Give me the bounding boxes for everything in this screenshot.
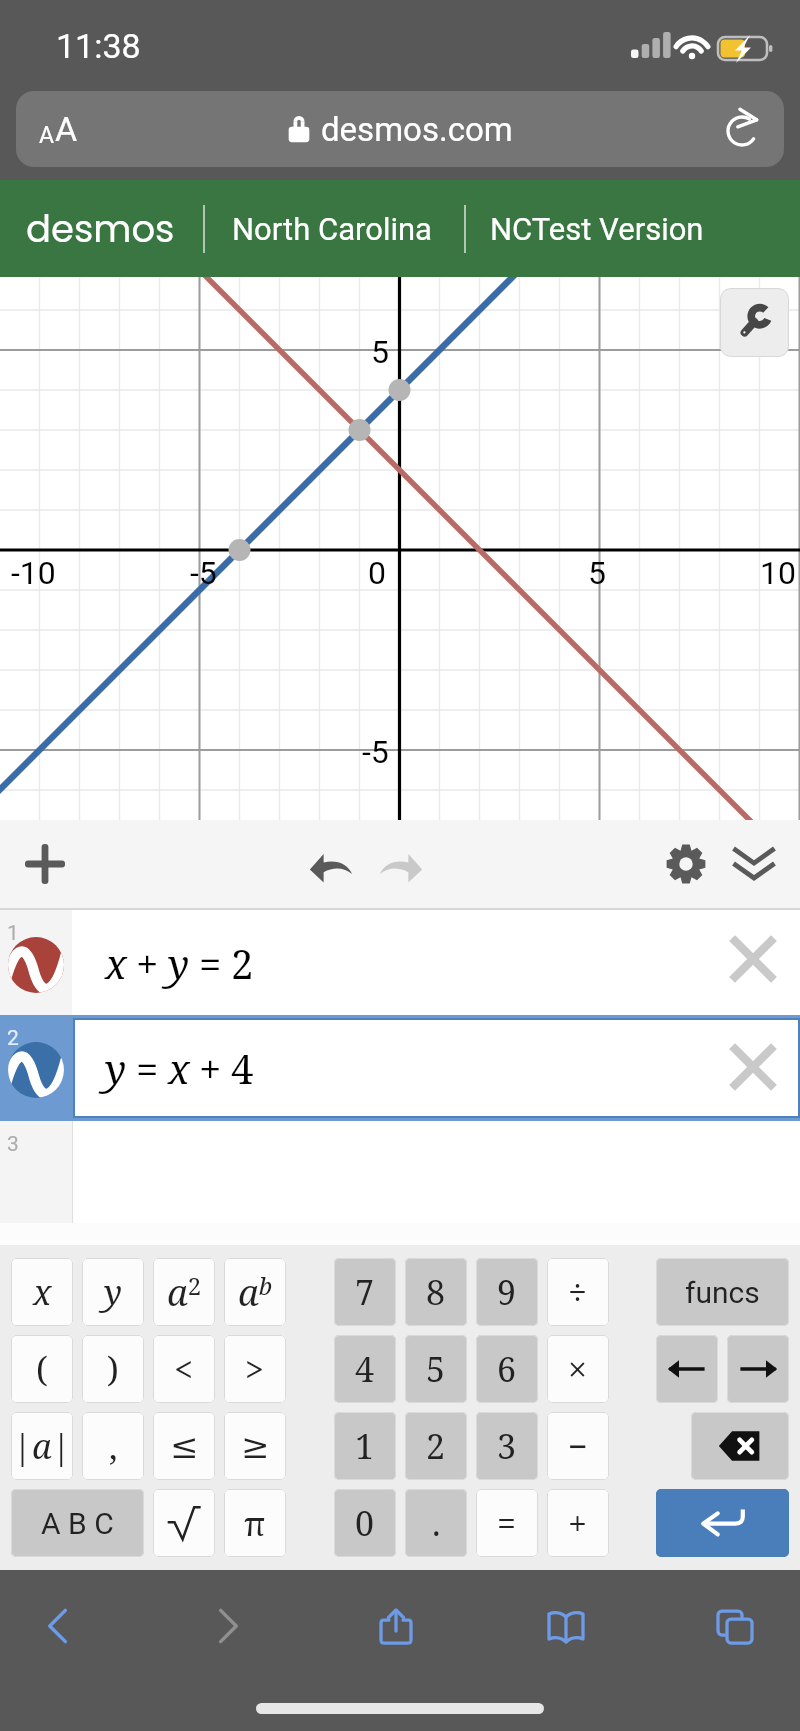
button[interactable]: 7: [334, 1258, 396, 1326]
staticText: |a|: [13, 1423, 71, 1469]
button[interactable]: Delete expression: [720, 926, 786, 992]
staticText: 11:38: [56, 26, 141, 66]
staticText: -5: [362, 733, 389, 771]
button[interactable]: 3: [476, 1412, 538, 1480]
button[interactable]: ×: [547, 1335, 609, 1403]
staticText: x: [33, 1269, 52, 1315]
staticText: 5: [588, 554, 606, 592]
staticText: funcs: [685, 1275, 760, 1310]
button[interactable]: 0: [334, 1489, 396, 1557]
button[interactable]: ABC: [11, 1489, 144, 1557]
staticText: 4: [355, 1346, 375, 1392]
button[interactable]: <: [153, 1335, 215, 1403]
staticText: x: [105, 936, 127, 990]
button[interactable]: 5: [405, 1335, 467, 1403]
staticText: 3: [7, 1132, 19, 1157]
staticText: 4: [231, 1041, 254, 1095]
button[interactable]: 9: [476, 1258, 538, 1326]
button[interactable]: Back: [10, 1578, 106, 1674]
staticText: -5: [190, 554, 217, 592]
button[interactable]: y: [82, 1258, 144, 1326]
staticText: 5: [426, 1346, 446, 1392]
button[interactable]: 1: [0, 910, 800, 1015]
button[interactable]: √: [153, 1489, 215, 1557]
button[interactable]: funcs: [656, 1258, 789, 1326]
staticText: desmos.com: [321, 110, 513, 149]
button[interactable]: Forward: [180, 1578, 276, 1674]
button[interactable]: A: [16, 91, 784, 167]
button[interactable]: x: [11, 1258, 73, 1326]
button[interactable]: =: [476, 1489, 538, 1557]
button[interactable]: Bookmarks: [518, 1578, 614, 1674]
staticText: +: [568, 1500, 588, 1546]
staticText: A: [39, 122, 55, 149]
button[interactable]: >: [224, 1335, 286, 1403]
button[interactable]: −: [547, 1412, 609, 1480]
staticText: 2: [7, 1026, 19, 1051]
staticText: A B C: [41, 1506, 114, 1541]
button[interactable]: |a|: [11, 1412, 73, 1480]
button[interactable]: 6: [476, 1335, 538, 1403]
button[interactable]: Delete expression: [720, 1034, 786, 1100]
button[interactable]: ≥: [224, 1412, 286, 1480]
staticText: π: [244, 1501, 266, 1546]
button[interactable]: π: [224, 1489, 286, 1557]
staticText: 8: [426, 1269, 446, 1315]
staticText: 0: [368, 554, 386, 592]
staticText: y: [168, 936, 190, 990]
staticText: 2: [426, 1423, 446, 1469]
staticText: 6: [497, 1346, 517, 1392]
staticText: +: [199, 1041, 222, 1095]
button[interactable]: ÷: [547, 1258, 609, 1326]
button[interactable]: Add expression: [10, 820, 80, 908]
button[interactable]: ,: [82, 1412, 144, 1480]
button[interactable]: [727, 1335, 789, 1403]
staticText: 1: [7, 921, 19, 946]
staticText: a2: [167, 1268, 202, 1317]
button[interactable]: Reload: [704, 91, 784, 167]
staticText: (: [36, 1346, 48, 1392]
staticText: =: [136, 1041, 159, 1095]
staticText: −: [568, 1423, 588, 1469]
button[interactable]: (: [11, 1335, 73, 1403]
button[interactable]: a2: [153, 1258, 215, 1326]
button[interactable]: [656, 1335, 718, 1403]
button[interactable]: Undo: [296, 820, 366, 908]
staticText: y: [104, 1269, 122, 1315]
staticText: 0: [355, 1500, 375, 1546]
staticText: A: [55, 109, 78, 149]
staticText: -10: [11, 554, 56, 592]
button[interactable]: 2: [405, 1412, 467, 1480]
button[interactable]: 1: [334, 1412, 396, 1480]
button[interactable]: Tabs: [687, 1578, 783, 1674]
button[interactable]: +: [547, 1489, 609, 1557]
staticText: 2: [231, 936, 254, 990]
button[interactable]: 8: [405, 1258, 467, 1326]
button[interactable]: Share: [348, 1578, 444, 1674]
button[interactable]: .: [405, 1489, 467, 1557]
button[interactable]: ≤: [153, 1412, 215, 1480]
button[interactable]: 2: [0, 1015, 800, 1121]
button[interactable]: Settings: [652, 820, 720, 908]
staticText: ): [107, 1346, 119, 1392]
button[interactable]: Collapse keypad: [720, 820, 788, 908]
staticText: 9: [497, 1269, 517, 1315]
button[interactable]: Graph settings: [720, 288, 789, 357]
staticText: ×: [568, 1346, 588, 1392]
button[interactable]: ab: [224, 1258, 286, 1326]
button[interactable]: 4: [334, 1335, 396, 1403]
staticText: +: [136, 936, 159, 990]
staticText: 10: [760, 554, 796, 592]
button[interactable]: ): [82, 1335, 144, 1403]
staticText: 7: [355, 1269, 375, 1315]
staticText: y: [105, 1041, 127, 1095]
staticText: 1: [355, 1423, 375, 1469]
staticText: North Carolina: [232, 211, 432, 247]
staticText: ≤: [170, 1426, 199, 1466]
staticText: ab: [238, 1268, 273, 1317]
button[interactable]: [656, 1489, 789, 1557]
button[interactable]: Redo: [366, 820, 436, 908]
button[interactable]: [691, 1412, 789, 1480]
staticText: =: [199, 936, 222, 990]
staticText: desmos: [26, 203, 175, 255]
